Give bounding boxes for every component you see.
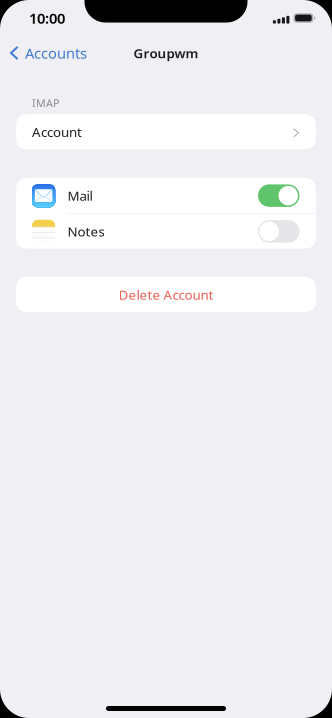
staticText: Mail — [67, 187, 92, 204]
staticText: 10:00 — [29, 8, 65, 28]
staticText: Delete Account — [118, 286, 213, 303]
staticText: Notes — [67, 223, 104, 240]
staticText: Account — [32, 123, 82, 141]
staticText: Groupwm — [133, 44, 198, 62]
button[interactable]: Accounts — [0, 36, 95, 70]
button[interactable]: Mail — [16, 178, 316, 213]
staticText: Accounts — [25, 43, 87, 63]
button[interactable]: Delete Account — [16, 277, 316, 312]
staticText: IMAP — [32, 96, 59, 110]
button[interactable]: Notes — [16, 214, 316, 249]
button[interactable]: Account — [16, 114, 316, 149]
